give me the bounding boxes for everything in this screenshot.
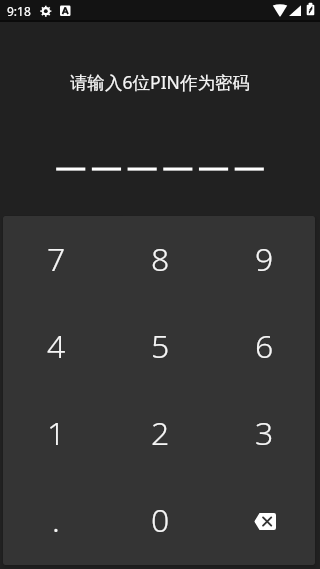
staticText: 请输入6位PIN作为密码 — [0, 70, 320, 94]
button[interactable]: 1 — [3, 391, 107, 478]
button[interactable]: 4 — [3, 304, 107, 391]
button[interactable]: 0 — [107, 478, 211, 565]
button[interactable]: 7 — [3, 216, 107, 304]
staticText: 7 — [47, 237, 66, 281]
button[interactable]: 3 — [211, 391, 315, 478]
staticText: 1 — [47, 411, 66, 455]
other: Backspace — [254, 513, 276, 530]
staticText: 5 — [151, 324, 170, 368]
staticText: 8 — [151, 237, 170, 281]
staticText: 6 — [255, 324, 274, 368]
button[interactable]: 6 — [211, 304, 315, 391]
staticText: 4 — [47, 324, 66, 368]
button[interactable]: Backspace — [211, 478, 315, 565]
button[interactable]: 5 — [107, 304, 211, 391]
button[interactable]: 9 — [211, 216, 315, 304]
staticText: . — [52, 498, 60, 542]
button[interactable]: . — [3, 478, 107, 565]
staticText: 3 — [255, 411, 274, 455]
button[interactable]: 2 — [107, 391, 211, 478]
button[interactable]: 8 — [107, 216, 211, 304]
staticText: 2 — [151, 411, 170, 455]
staticText: 9 — [255, 237, 274, 281]
staticText: 0 — [151, 498, 170, 542]
staticText: 9:18 — [7, 3, 31, 19]
